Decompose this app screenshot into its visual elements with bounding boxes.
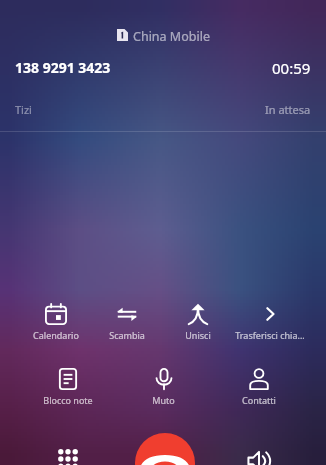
button[interactable]: Muto	[116, 368, 211, 406]
button[interactable]: Calendario	[20, 303, 91, 341]
button[interactable]: Contatti	[211, 368, 306, 406]
staticText: Scambia	[109, 329, 145, 341]
staticText: Calendario	[33, 329, 79, 341]
button[interactable]: Blocco note	[20, 368, 116, 406]
staticText: China Mobile	[133, 28, 210, 42]
button[interactable]: End call	[135, 433, 195, 465]
staticText: Blocco note	[43, 394, 93, 406]
staticText: Tizi	[15, 102, 32, 114]
button[interactable]: Scambia	[91, 303, 162, 341]
staticText: 00:59	[272, 58, 311, 74]
staticText: In attesa	[265, 102, 311, 114]
staticText: Unisci	[185, 329, 211, 341]
button[interactable]: Dialpad	[46, 437, 90, 465]
staticText: Muto	[152, 394, 175, 406]
button[interactable]: Unisci	[162, 303, 234, 341]
staticText: Contatti	[242, 394, 276, 406]
button[interactable]: Speaker	[237, 439, 281, 465]
staticText: Trasferisci chia...	[235, 329, 305, 341]
staticText: 138 9291 3423	[15, 58, 111, 74]
button[interactable]: Trasferisci chia...	[234, 303, 306, 341]
